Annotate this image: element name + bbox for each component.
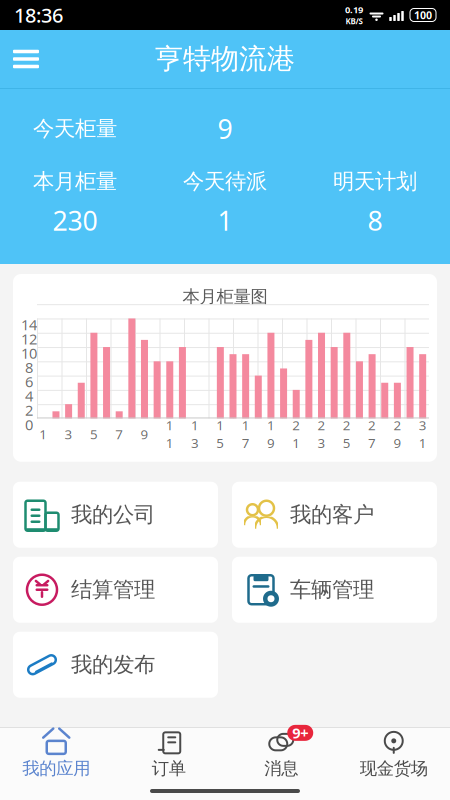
staticText: 0 — [25, 415, 33, 434]
staticText: 17 — [242, 416, 250, 452]
staticText: 1 — [217, 203, 232, 238]
staticText: 11 — [166, 416, 174, 452]
staticText: 100 — [414, 8, 432, 22]
staticText: 14 — [21, 315, 37, 334]
button[interactable]: 我的客户 — [232, 482, 437, 548]
button[interactable]: 订单 — [112, 728, 225, 782]
button[interactable]: 我的发布 — [13, 632, 218, 698]
staticText: 9+ — [292, 723, 308, 743]
staticText: 现金货场 — [360, 758, 428, 779]
staticText: 21 — [292, 416, 300, 452]
button[interactable]: 菜单 — [0, 30, 52, 88]
staticText: 我的应用 — [22, 758, 90, 779]
staticText: 27 — [368, 416, 376, 452]
staticText: 18:36 — [14, 2, 63, 28]
staticText: 12 — [21, 329, 37, 348]
button[interactable]: 我的公司 — [13, 482, 218, 548]
staticText: 5 — [90, 425, 98, 443]
staticText: 23 — [317, 416, 325, 452]
staticText: 1 — [39, 425, 47, 443]
staticText: 明天计划 — [333, 168, 417, 195]
staticText: 230 — [52, 203, 97, 238]
button[interactable]: 9+ — [225, 728, 337, 782]
staticText: 8 — [367, 203, 382, 238]
staticText: 29 — [393, 416, 401, 452]
staticText: 19 — [267, 416, 275, 452]
staticText: 消息 — [264, 758, 298, 779]
staticText: 车辆管理 — [290, 577, 374, 603]
staticText: 10 — [21, 343, 37, 363]
staticText: 本月柜量 — [33, 168, 117, 195]
staticText: KB/S — [345, 16, 362, 26]
staticText: 我的发布 — [71, 652, 155, 678]
staticText: 今天待派 — [183, 168, 267, 195]
staticText: 2 — [25, 400, 33, 420]
staticText: 0.19 — [345, 3, 363, 16]
staticText: 15 — [216, 416, 224, 452]
staticText: 9 — [217, 111, 232, 146]
staticText: 4 — [25, 386, 33, 406]
staticText: 订单 — [152, 758, 186, 779]
staticText: 25 — [343, 416, 351, 452]
staticText: 6 — [25, 372, 33, 391]
staticText: 亨特物流港 — [155, 42, 295, 76]
staticText: 7 — [115, 425, 123, 443]
staticText: 3 — [65, 425, 73, 443]
staticText: 我的公司 — [71, 502, 155, 528]
staticText: 13 — [191, 416, 199, 452]
staticText: 31 — [419, 416, 427, 452]
button[interactable]: 现金货场 — [337, 728, 450, 782]
button[interactable]: 车辆管理 — [232, 557, 437, 623]
staticText: 结算管理 — [71, 577, 155, 603]
staticText: 我的客户 — [290, 502, 374, 528]
staticText: 8 — [25, 358, 33, 377]
button[interactable]: 我的应用 — [0, 728, 112, 782]
button[interactable]: 结算管理 — [13, 557, 218, 623]
staticText: 本月柜量图 — [182, 286, 267, 307]
staticText: 9 — [140, 425, 148, 443]
staticText: 今天柜量 — [33, 116, 117, 142]
